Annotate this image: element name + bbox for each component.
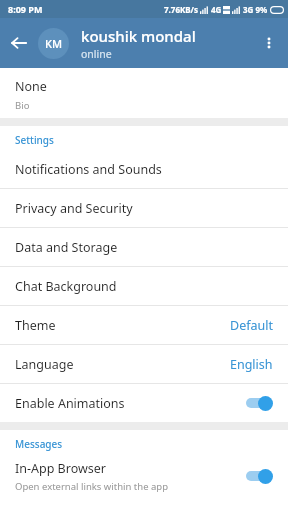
button[interactable]: Data and Storage xyxy=(0,228,288,266)
staticText: 4G xyxy=(211,4,222,15)
button[interactable]: More options xyxy=(250,24,288,62)
staticText: In-App Browser xyxy=(15,460,106,477)
staticText: Privacy and Security xyxy=(15,200,273,217)
staticText: Language xyxy=(15,356,230,373)
staticText: Default xyxy=(230,317,273,334)
staticText: Data and Storage xyxy=(15,239,273,256)
staticText: English xyxy=(230,356,273,373)
staticText: koushik mondal xyxy=(81,26,196,46)
staticText: KM xyxy=(45,36,63,51)
staticText: Open external links within the app xyxy=(15,480,169,493)
button[interactable]: In-App Browser xyxy=(0,454,288,498)
button[interactable]: koushik mondal xyxy=(81,26,250,61)
staticText: 3G 9% xyxy=(243,4,268,15)
staticText: 8:09 PM xyxy=(8,3,43,15)
button[interactable]: Language xyxy=(0,345,288,383)
button[interactable]: None xyxy=(0,74,288,118)
staticText: Messages xyxy=(15,437,63,451)
button[interactable]: Enable Animations xyxy=(0,384,288,422)
button[interactable]: Theme xyxy=(0,306,288,344)
staticText: Bio xyxy=(15,99,30,112)
staticText: Notifications and Sounds xyxy=(15,161,273,178)
button[interactable]: Notifications and Sounds xyxy=(0,150,288,188)
button[interactable]: Privacy and Security xyxy=(0,189,288,227)
staticText: 7.76KB/s xyxy=(164,4,198,15)
button[interactable]: Chat Background xyxy=(0,267,288,305)
button[interactable]: KM xyxy=(38,28,69,59)
staticText: Chat Background xyxy=(15,278,273,295)
staticText: Theme xyxy=(15,317,230,334)
staticText: None xyxy=(15,78,47,95)
staticText: online xyxy=(81,47,112,61)
button[interactable]: Back xyxy=(0,24,38,62)
staticText: Enable Animations xyxy=(15,395,245,412)
staticText: Settings xyxy=(15,133,54,147)
